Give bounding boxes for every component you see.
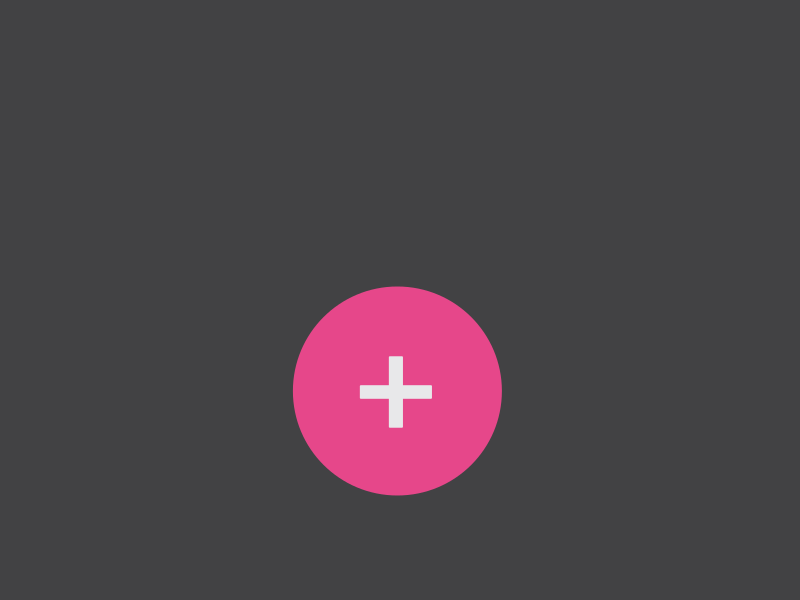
button[interactable]: Add bbox=[293, 286, 502, 495]
